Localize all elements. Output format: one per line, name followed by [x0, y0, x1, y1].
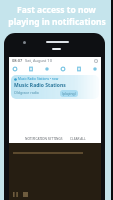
button[interactable]: Quick setting	[92, 66, 98, 72]
staticText: Oldgrace radio	[14, 90, 40, 95]
button[interactable]: CLEAR ALL	[70, 137, 86, 141]
staticText: 08:07	[12, 58, 23, 63]
staticText: Sat, August 10	[25, 58, 52, 63]
staticText: CLEAR ALL	[70, 137, 86, 141]
staticText: Music Radio Stations	[14, 82, 66, 89]
button[interactable]: (playing)	[62, 91, 76, 96]
button[interactable]: NOTIFICATION SETTINGS	[25, 137, 63, 141]
button[interactable]: Pause	[13, 192, 18, 197]
button[interactable]: Quick setting	[28, 66, 34, 72]
button[interactable]: Quick setting	[12, 66, 18, 72]
button[interactable]: Settings	[94, 59, 98, 63]
button[interactable]: Music Radio Stations • now	[11, 75, 99, 99]
button[interactable]: Quick setting	[76, 66, 82, 72]
staticText: Fast access to now	[17, 4, 96, 16]
button[interactable]: Quick setting	[60, 66, 66, 72]
staticText: NOTIFICATION SETTINGS	[25, 137, 63, 141]
staticText: Music Radio Stations • now	[18, 77, 59, 81]
staticText: (playing)	[62, 91, 76, 96]
button[interactable]: Quick setting	[44, 66, 50, 72]
staticText: playing in notifications	[8, 16, 106, 28]
